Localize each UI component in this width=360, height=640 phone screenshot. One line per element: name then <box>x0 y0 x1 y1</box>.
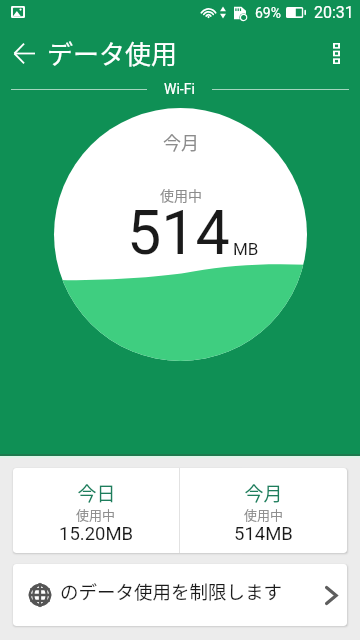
staticText: 514 <box>127 197 230 268</box>
staticText: 514MB <box>234 523 293 545</box>
staticText: 使用中 <box>244 505 284 524</box>
staticText: 20:31 <box>314 3 354 22</box>
button[interactable]: More options <box>312 29 360 77</box>
staticText: 使用中 <box>160 185 202 205</box>
staticText: 69% <box>255 5 281 21</box>
button[interactable]: Back <box>0 29 48 77</box>
staticText: MB <box>233 239 259 259</box>
button[interactable]: 今日 <box>13 468 179 553</box>
staticText: データ使用 <box>47 34 178 72</box>
button[interactable]: 今月 <box>180 468 347 553</box>
staticText: 今月 <box>163 129 199 155</box>
staticText: Wi-Fi <box>164 81 195 97</box>
staticText: 今日 <box>77 479 116 507</box>
staticText: 今月 <box>244 479 283 507</box>
staticText: 使用中 <box>76 505 116 524</box>
staticText: 15.20MB <box>59 523 134 545</box>
staticText: のデータ使用を制限します <box>60 578 283 605</box>
button[interactable]: のデータ使用を制限します <box>13 564 347 626</box>
